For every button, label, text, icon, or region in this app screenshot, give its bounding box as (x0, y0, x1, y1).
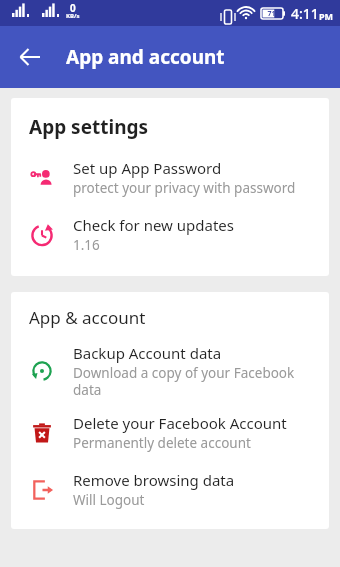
staticText: 1.16 (73, 236, 100, 254)
staticText: KB/s (66, 12, 80, 20)
staticText: Delete your Facebook Account (73, 413, 287, 433)
button[interactable]: Backup Account data (11, 339, 329, 403)
staticText: 0 (70, 1, 76, 15)
button[interactable]: Back (10, 37, 50, 77)
staticText: Check for new updates (73, 215, 234, 235)
staticText: App & account (29, 306, 146, 329)
staticText: PM (319, 10, 334, 22)
staticText: App and account (66, 44, 225, 70)
staticText: Permanently delete account (73, 434, 251, 452)
staticText: Remove browsing data (73, 470, 235, 490)
button[interactable]: Set up App Password (11, 154, 329, 201)
button[interactable]: Delete your Facebook Account (11, 409, 329, 456)
staticText: 4:11 (291, 4, 319, 23)
staticText: App settings (29, 114, 149, 140)
staticText: Will Logout (73, 491, 145, 509)
button[interactable]: Remove browsing data (11, 466, 329, 513)
staticText: 71 (267, 9, 276, 19)
staticText: protect your privacy with password (73, 179, 296, 197)
staticText: Set up App Password (73, 158, 222, 178)
staticText: Backup Account data (73, 343, 222, 363)
staticText: Download a copy of your Facebook data (73, 364, 317, 399)
button[interactable]: Check for new updates (11, 211, 329, 258)
